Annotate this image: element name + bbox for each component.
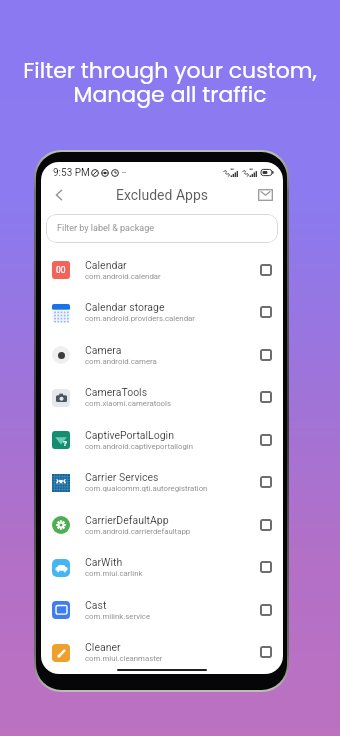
staticText: com.milink.service [85,612,151,621]
button[interactable]: Mail [251,183,279,207]
staticText: com.qualcomm.qti.autoregistration [85,484,208,493]
staticText: CaptivePortalLogin [85,429,174,441]
staticText: com.android.calendar [85,272,161,281]
staticText: Filter by label & package [57,223,154,234]
staticText: com.android.providers.calendar [85,314,195,323]
staticText: com.android.carrierdefaultapp [85,527,191,536]
staticText: Filter through your custom, Manage all t… [0,55,340,109]
staticText: com.android.captiveportallogin [85,442,194,451]
staticText: CarrierDefaultApp [85,514,169,526]
staticText: 00 [56,265,66,275]
staticText: CameraTools [85,386,148,398]
button[interactable]: Select Camera [255,344,277,366]
button[interactable]: Calendar storage [41,291,283,333]
button[interactable]: Filter by label & package [46,214,278,243]
button[interactable]: CarrierDefaultApp [41,503,283,546]
button[interactable]: Select CarWith [255,556,277,578]
staticText: Calendar storage [85,301,165,313]
staticText: Carrier Services [85,471,159,483]
staticText: Excluded Apps [116,187,208,203]
staticText: com.miui.cleanmaster [85,654,163,663]
button[interactable]: Select Cleaner [255,641,277,663]
button[interactable]: 00 [41,248,283,291]
button[interactable]: Select Carrier Services [255,471,277,493]
staticText: Camera [85,344,122,356]
button[interactable]: Select Calendar storage [255,301,277,323]
button[interactable]: Camera [41,333,283,376]
button[interactable]: Select Calendar [255,259,277,281]
staticText: com.miui.carlink [85,569,143,578]
button[interactable]: CarWith [41,546,283,588]
button[interactable]: Select CaptivePortalLogin [255,429,277,451]
staticText: Calendar [85,259,127,271]
staticText: ? [63,439,67,448]
staticText: 9:53 PM [53,167,90,179]
button[interactable]: Cast [41,588,283,631]
button[interactable]: Select Cast [255,599,277,621]
staticText: com.xiaomi.cameratools [85,399,171,408]
staticText: Cleaner [85,641,121,653]
button[interactable]: Select CameraTools [255,386,277,408]
staticText: CarWith [85,556,123,568]
button[interactable]: CameraTools [41,376,283,418]
button[interactable]: ? [41,418,283,461]
staticText: Cast [85,599,107,611]
button[interactable]: Carrier Services [41,461,283,503]
button[interactable]: Cleaner [41,631,283,673]
staticText: com.android.camera [85,357,157,366]
button[interactable]: Back [45,183,73,207]
button[interactable]: Select CarrierDefaultApp [255,514,277,536]
